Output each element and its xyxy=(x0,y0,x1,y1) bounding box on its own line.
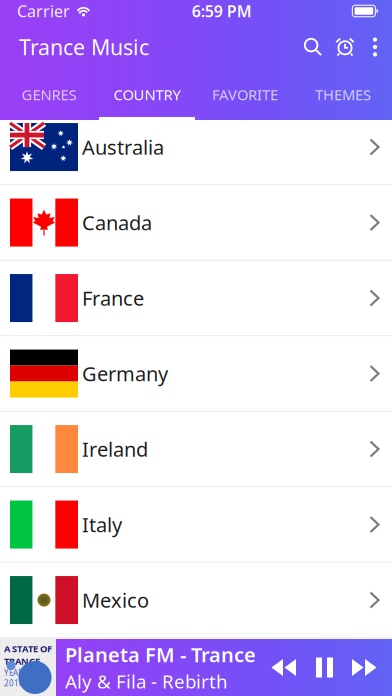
button[interactable]: Italy xyxy=(0,487,392,563)
staticText: A STATE OF TRANCE xyxy=(4,642,52,667)
staticText: Australia xyxy=(82,134,164,160)
staticText: GENRES xyxy=(21,85,76,104)
button[interactable]: THEMES xyxy=(294,72,392,120)
button[interactable]: France xyxy=(0,261,392,336)
button[interactable]: Canada xyxy=(0,185,392,261)
staticText: 6:59 PM xyxy=(192,0,252,22)
staticText: Planeta FM - Trance xyxy=(65,641,256,668)
staticText: Canada xyxy=(82,209,152,236)
button[interactable]: FAVORITE xyxy=(196,72,294,120)
staticText: YEAR MIX 2018 xyxy=(4,667,40,688)
button[interactable]: Search xyxy=(297,27,329,67)
staticText: Germany xyxy=(82,360,168,387)
button[interactable]: More options xyxy=(361,27,389,67)
staticText: THEMES xyxy=(315,85,371,104)
staticText: Ireland xyxy=(82,436,148,462)
staticText: France xyxy=(82,285,144,311)
staticText: Italy xyxy=(82,511,122,538)
staticText: Mexico xyxy=(82,587,149,613)
button[interactable]: Ireland xyxy=(0,412,392,487)
button[interactable]: Australia xyxy=(0,110,392,185)
button[interactable]: Mexico xyxy=(0,563,392,638)
button[interactable]: A STATE OF TRANCE xyxy=(0,639,392,696)
staticText: COUNTRY xyxy=(113,85,180,104)
button[interactable]: Germany xyxy=(0,336,392,412)
staticText: Trance Music xyxy=(19,33,149,61)
staticText: Carrier xyxy=(17,0,70,22)
button[interactable]: GENRES xyxy=(0,72,98,120)
button[interactable]: COUNTRY xyxy=(98,72,196,120)
staticText: FAVORITE xyxy=(212,85,278,104)
button[interactable]: Sleep timer xyxy=(329,27,361,67)
staticText: Aly & Fila - Rebirth xyxy=(65,669,228,694)
